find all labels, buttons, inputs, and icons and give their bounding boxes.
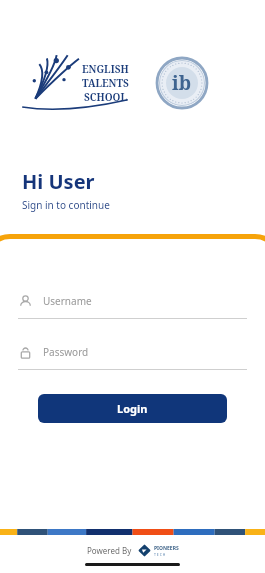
staticText: ib — [172, 70, 192, 96]
staticText: PIONEERS — [154, 545, 179, 552]
staticText: TALENTS — [82, 76, 129, 90]
button[interactable]: Password — [18, 341, 247, 370]
button[interactable]: Username — [18, 290, 247, 319]
staticText: Password — [43, 345, 89, 359]
staticText: Login — [117, 401, 148, 416]
staticText: Powered By — [87, 545, 132, 556]
staticText: Sign in to continue — [22, 198, 110, 212]
staticText: Username — [43, 294, 92, 308]
staticText: Hi User — [22, 168, 95, 195]
staticText: SCHOOL — [84, 90, 127, 104]
staticText: T E C H — [154, 552, 166, 557]
staticText: ENGLISH — [82, 62, 129, 76]
button[interactable]: Login — [38, 394, 227, 423]
